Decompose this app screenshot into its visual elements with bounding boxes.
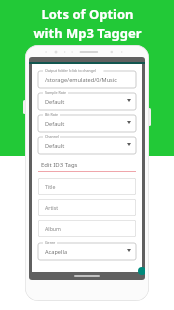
- staticText: Album: [45, 225, 61, 232]
- staticText: Title: [45, 183, 56, 190]
- staticText: Edit ID3 Tags: [41, 161, 78, 169]
- button[interactable]: Bit Rate: [38, 112, 136, 132]
- staticText: Default: [45, 120, 65, 128]
- button[interactable]: Channel: [38, 134, 136, 154]
- staticText: Sample Rate: [45, 90, 67, 95]
- staticText: Output folder (click to change): [45, 68, 97, 73]
- button[interactable]: Genre: [38, 240, 136, 260]
- staticText: /storage/emulated/0/Music: [45, 76, 117, 84]
- staticText: Acapella: [45, 248, 68, 256]
- staticText: Channel: [45, 134, 59, 139]
- staticText: Lots of Option: [41, 5, 134, 23]
- button[interactable]: Title: [38, 178, 136, 195]
- staticText: with Mp3 Tagger: [33, 24, 142, 42]
- button[interactable]: Artist: [38, 199, 136, 216]
- button[interactable]: Album: [38, 220, 136, 237]
- staticText: Bit Rate: [45, 112, 59, 117]
- staticText: Default: [45, 142, 65, 150]
- staticText: Artist: [45, 204, 59, 211]
- button[interactable]: Convert: [138, 267, 145, 275]
- button[interactable]: Sample Rate: [38, 90, 136, 110]
- staticText: Default: [45, 98, 65, 106]
- button[interactable]: Output folder (click to change): [38, 68, 136, 88]
- staticText: Genre: [45, 240, 56, 245]
